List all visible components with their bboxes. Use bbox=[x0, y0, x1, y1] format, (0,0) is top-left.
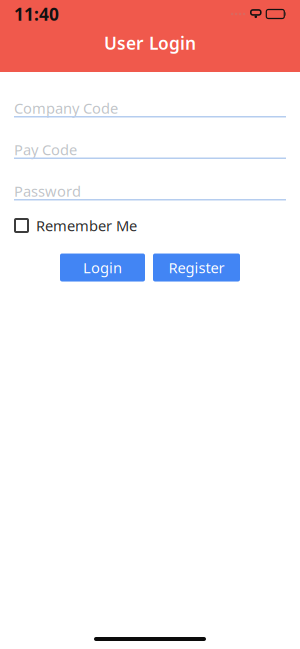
staticText: User Login bbox=[104, 31, 196, 54]
staticText: Pay Code bbox=[14, 140, 77, 159]
staticText: Login bbox=[83, 258, 122, 277]
staticText: Register bbox=[168, 258, 224, 277]
button[interactable]: Login bbox=[60, 253, 145, 281]
staticText: Remember Me bbox=[36, 216, 137, 235]
staticText: Company Code bbox=[14, 98, 118, 118]
button[interactable]: Register bbox=[153, 253, 240, 281]
button[interactable]: Remember Me bbox=[0, 214, 300, 236]
staticText: 11:40 bbox=[14, 2, 59, 25]
staticText: Password bbox=[14, 181, 81, 201]
